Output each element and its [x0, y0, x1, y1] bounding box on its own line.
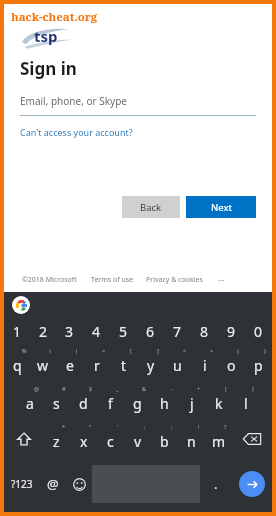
button[interactable]: 5 — [110, 318, 137, 344]
button[interactable]: ?123 — [4, 458, 40, 510]
button[interactable]: < — [164, 344, 191, 382]
button[interactable]: Can't access your account? — [20, 126, 133, 138]
button[interactable]: Next — [186, 196, 256, 218]
staticText: e — [66, 356, 74, 375]
staticText: ( — [225, 385, 227, 392]
staticText: o — [227, 356, 236, 375]
button[interactable]: ? — [205, 420, 232, 458]
staticText: - — [171, 385, 173, 392]
staticText: ' — [117, 423, 119, 430]
staticText: r — [94, 356, 100, 375]
staticText: @ — [34, 385, 39, 392]
staticText: : — [144, 423, 146, 430]
button[interactable]: _ — [97, 382, 124, 420]
staticText: h — [160, 394, 169, 413]
button[interactable]: } — [245, 344, 272, 382]
button[interactable]: : — [124, 420, 151, 458]
staticText: ! — [198, 423, 200, 430]
staticText: _ — [116, 385, 119, 392]
button[interactable]: ( — [205, 382, 232, 420]
button[interactable]: ©2018 Microsoft — [22, 275, 77, 285]
staticText: 4 — [92, 322, 101, 341]
staticText: ] — [157, 347, 159, 354]
staticText: 0 — [254, 322, 263, 341]
button[interactable]: | — [56, 344, 83, 382]
button[interactable]: $ — [70, 382, 97, 420]
button[interactable]: Back — [122, 196, 180, 218]
staticText: s — [53, 394, 60, 413]
button[interactable]: [ — [110, 344, 137, 382]
staticText: ? — [224, 423, 227, 430]
staticText: j — [190, 394, 194, 413]
staticText: q — [13, 356, 22, 375]
staticText: ) — [252, 385, 254, 392]
staticText: # — [62, 385, 66, 392]
button[interactable]: 4 — [83, 318, 110, 344]
button[interactable]: \ — [30, 344, 56, 382]
staticText: { — [237, 347, 240, 354]
staticText: * — [62, 423, 66, 430]
button[interactable]: 8 — [191, 318, 218, 344]
button[interactable]: More — [213, 274, 229, 286]
staticText: Sign in — [20, 57, 77, 80]
button[interactable]: ! — [178, 420, 205, 458]
button[interactable]: # — [43, 382, 70, 420]
button[interactable]: Privacy & cookies — [146, 275, 203, 285]
staticText: f — [108, 394, 113, 413]
button[interactable]: > — [191, 344, 218, 382]
button[interactable]: 9 — [218, 318, 245, 344]
button[interactable]: ' — [97, 420, 124, 458]
staticText: < — [183, 347, 187, 354]
button[interactable]: = — [83, 344, 110, 382]
button[interactable]: 0 — [245, 318, 272, 344]
button[interactable]: ; — [151, 420, 178, 458]
button[interactable]: Shift — [4, 420, 43, 458]
staticText: u — [173, 356, 182, 375]
staticText: x — [80, 432, 88, 451]
button[interactable]: @ — [16, 382, 43, 420]
staticText: w — [37, 356, 49, 375]
staticText: i — [203, 356, 207, 375]
button[interactable]: + — [178, 382, 205, 420]
button[interactable]: Backspace — [232, 420, 272, 458]
button[interactable]: 2 — [30, 318, 56, 344]
button[interactable]: 3 — [56, 318, 83, 344]
staticText: } — [264, 347, 267, 354]
button[interactable]: Emoji — [66, 458, 92, 510]
staticText: 9 — [227, 322, 236, 341]
staticText: % — [22, 347, 27, 354]
staticText: ; — [171, 423, 173, 430]
button[interactable]: Enter — [239, 471, 265, 497]
staticText: n — [187, 432, 196, 451]
button[interactable]: 6 — [137, 318, 164, 344]
button[interactable]: Terms of use — [91, 275, 134, 285]
button[interactable]: % — [4, 344, 30, 382]
button[interactable]: 7 — [164, 318, 191, 344]
staticText: 8 — [200, 322, 209, 341]
button[interactable]: * — [43, 420, 70, 458]
button[interactable]: - — [151, 382, 178, 420]
staticText: z — [53, 432, 60, 451]
button[interactable]: { — [218, 344, 245, 382]
staticText: m — [212, 432, 226, 451]
button[interactable]: @ — [40, 458, 66, 510]
staticText: l — [244, 394, 248, 413]
button[interactable]: Google — [12, 296, 30, 314]
button[interactable]: ] — [137, 344, 164, 382]
button[interactable]: . — [200, 458, 231, 510]
staticText: . — [214, 475, 218, 493]
staticText: \ — [49, 347, 52, 354]
button[interactable]: 1 — [4, 318, 30, 344]
button[interactable]: ) — [232, 382, 259, 420]
button[interactable]: & — [124, 382, 151, 420]
staticText: v — [134, 432, 142, 451]
staticText: d — [79, 394, 88, 413]
staticText: hack-cheat.org — [11, 9, 98, 25]
button[interactable]: Email, phone, or Skype — [20, 94, 256, 116]
staticText: k — [215, 394, 223, 413]
staticText: | — [75, 347, 79, 354]
button[interactable]: " — [70, 420, 97, 458]
staticText: 7 — [173, 322, 182, 341]
staticText: @ — [47, 475, 59, 493]
